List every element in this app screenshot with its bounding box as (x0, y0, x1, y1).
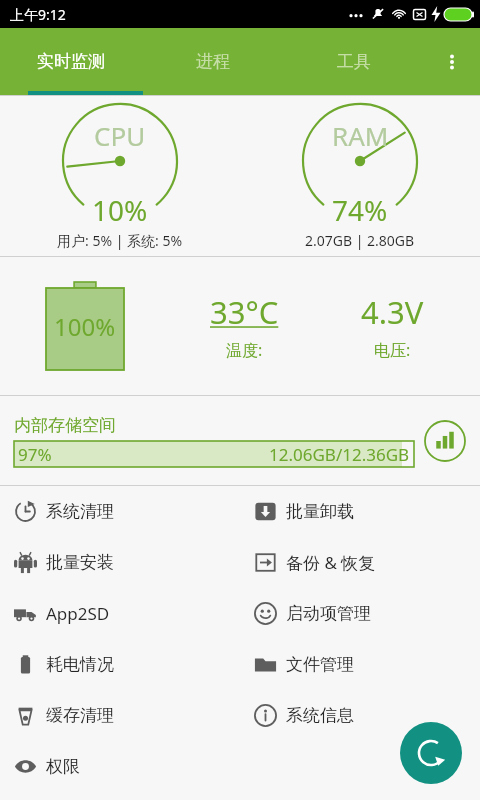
staticText: 100% (54, 310, 116, 343)
button[interactable]: RAM (240, 96, 480, 256)
staticText: 实时监测 (37, 51, 105, 72)
staticText: 2.07GB | 2.80GB (305, 231, 415, 250)
staticText: CPU (94, 118, 146, 153)
staticText: 97% (18, 443, 52, 466)
button[interactable]: 系统清理 (0, 486, 240, 537)
button[interactable]: 缓存清理 (0, 690, 240, 741)
staticText: 耗电情况 (46, 654, 114, 675)
staticText: App2SD (46, 602, 110, 625)
button[interactable]: App2SD (0, 588, 240, 639)
staticText: 上午9:12 (10, 5, 66, 24)
button[interactable]: More options (424, 28, 480, 95)
staticText: 33°C (210, 291, 279, 333)
button[interactable]: 批量卸载 (240, 486, 480, 537)
staticText: 启动项管理 (286, 603, 371, 624)
button[interactable]: 内部存储空间 (14, 396, 466, 485)
staticText: 74% (332, 191, 388, 229)
staticText: 工具 (337, 51, 371, 72)
button[interactable]: 耗电情况 (0, 639, 240, 690)
staticText: 缓存清理 (46, 705, 114, 726)
staticText: 批量卸载 (286, 501, 354, 522)
button[interactable]: 系统信息 (240, 690, 480, 741)
button[interactable]: Refresh (400, 722, 462, 784)
button[interactable]: 实时监测 (0, 28, 142, 95)
staticText: 10% (92, 191, 148, 229)
staticText: 温度: (226, 339, 263, 361)
staticText: 系统清理 (46, 501, 114, 522)
staticText: 12.06GB/12.36GB (269, 443, 410, 466)
button[interactable]: 文件管理 (240, 639, 480, 690)
button[interactable]: 启动项管理 (240, 588, 480, 639)
button[interactable]: 工具 (283, 28, 424, 95)
staticText: 批量安装 (46, 552, 114, 573)
staticText: 文件管理 (286, 654, 354, 675)
staticText: 用户: 5% | 系统: 5% (57, 231, 183, 250)
staticText: 电压: (374, 339, 411, 361)
button[interactable]: 批量安装 (0, 537, 240, 588)
button[interactable]: CPU (0, 96, 240, 256)
staticText: 备份 & 恢复 (286, 551, 376, 574)
staticText: RAM (332, 118, 389, 153)
button[interactable]: 备份 & 恢复 (240, 537, 480, 588)
staticText: 进程 (196, 51, 230, 72)
staticText: 内部存储空间 (14, 415, 116, 436)
button[interactable]: Storage chart (424, 420, 466, 462)
button[interactable]: 权限 (0, 741, 240, 792)
button[interactable]: 进程 (142, 28, 283, 95)
staticText: 4.3V (361, 291, 424, 333)
staticText: 权限 (46, 756, 80, 777)
staticText: 系统信息 (286, 705, 354, 726)
